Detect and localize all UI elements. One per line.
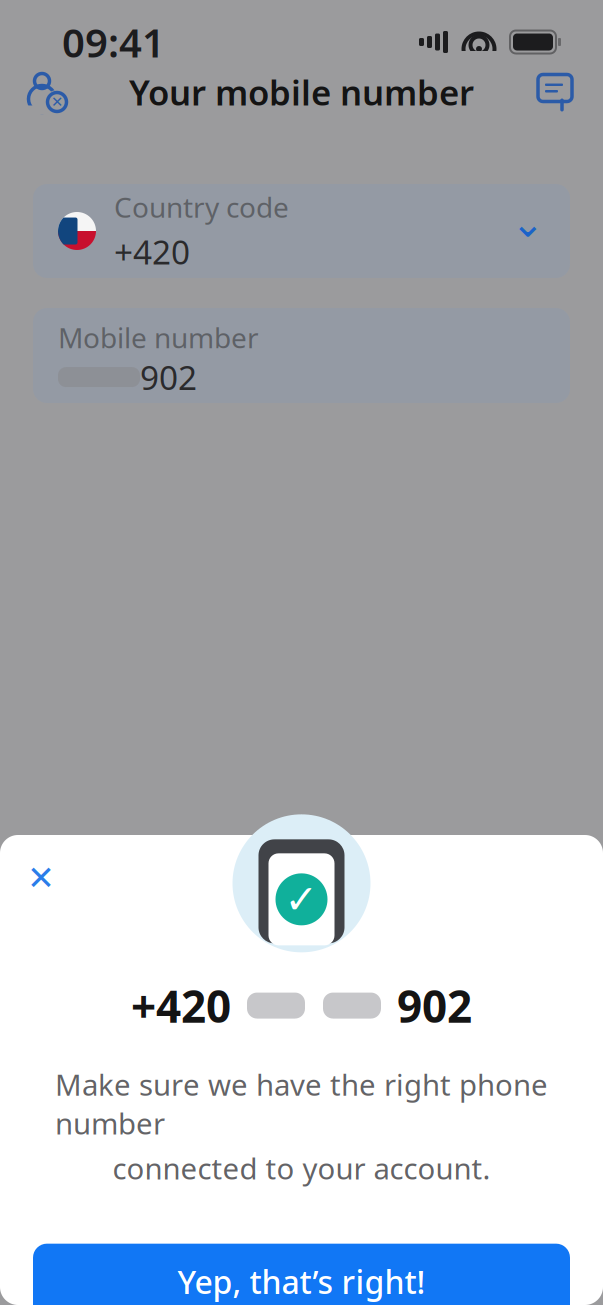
staticText: Country code (114, 188, 289, 225)
staticText: 902 (140, 355, 197, 399)
staticText: Your mobile number (129, 69, 474, 115)
button[interactable]: Yep, that’s right! (33, 1244, 570, 1305)
staticText: Yep, that’s right! (177, 1260, 425, 1303)
staticText: connected to your account. (112, 1149, 490, 1188)
staticText: Mobile number (58, 319, 259, 356)
staticText: ⌄ (511, 200, 545, 246)
button[interactable]: Country code (33, 184, 570, 278)
staticText: +420 (131, 976, 231, 1035)
staticText: ✓ (284, 877, 318, 922)
button[interactable]: Mobile number (33, 308, 570, 403)
staticText: 09:41 (62, 15, 165, 68)
staticText: ✕ (27, 859, 55, 897)
staticText: Make sure we have the right phone number (55, 1065, 548, 1143)
button[interactable]: Chat support (529, 66, 581, 118)
staticText: +420 (114, 229, 190, 274)
button[interactable]: Close (14, 851, 68, 905)
staticText: 902 (397, 976, 472, 1035)
button[interactable]: Remove account (22, 66, 74, 118)
staticText: ✕ (51, 94, 63, 110)
